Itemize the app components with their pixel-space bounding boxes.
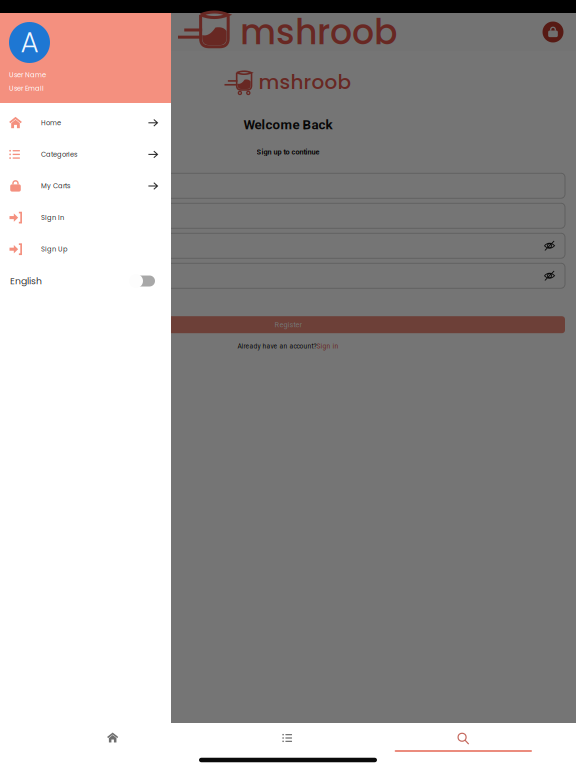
staticText: Sign In: [41, 213, 64, 222]
button[interactable]: Home: [0, 107, 171, 139]
staticText: Already have an account?: [237, 342, 316, 350]
staticText: User Email: [9, 84, 44, 93]
staticText: User Name: [9, 70, 46, 80]
staticText: A: [20, 23, 38, 62]
staticText: mshroob: [240, 8, 398, 56]
staticText: Categories: [41, 150, 77, 159]
button[interactable]: Home: [25, 723, 200, 752]
button[interactable]: Sign In: [0, 202, 171, 233]
staticText: mshroob: [258, 68, 351, 96]
staticText: Register: [274, 320, 301, 329]
staticText: My Carts: [41, 181, 70, 191]
button[interactable]: Sign in: [316, 342, 338, 350]
button[interactable]: Register: [11, 316, 565, 333]
button[interactable]: Categories: [0, 139, 171, 170]
button[interactable]: Categories: [200, 723, 376, 752]
button[interactable]: English: [0, 265, 171, 297]
staticText: Sign up to continue: [256, 148, 319, 156]
button[interactable]: My cart: [538, 17, 568, 47]
button[interactable]: My Carts: [0, 170, 171, 202]
button[interactable]: Sign Up: [0, 233, 171, 265]
staticText: Sign Up: [41, 244, 68, 254]
staticText: English: [10, 274, 42, 288]
staticText: Home: [41, 118, 61, 127]
staticText: Welcome Back: [243, 117, 332, 133]
staticText: Sign in: [316, 342, 338, 350]
button[interactable]: Search: [376, 723, 551, 752]
